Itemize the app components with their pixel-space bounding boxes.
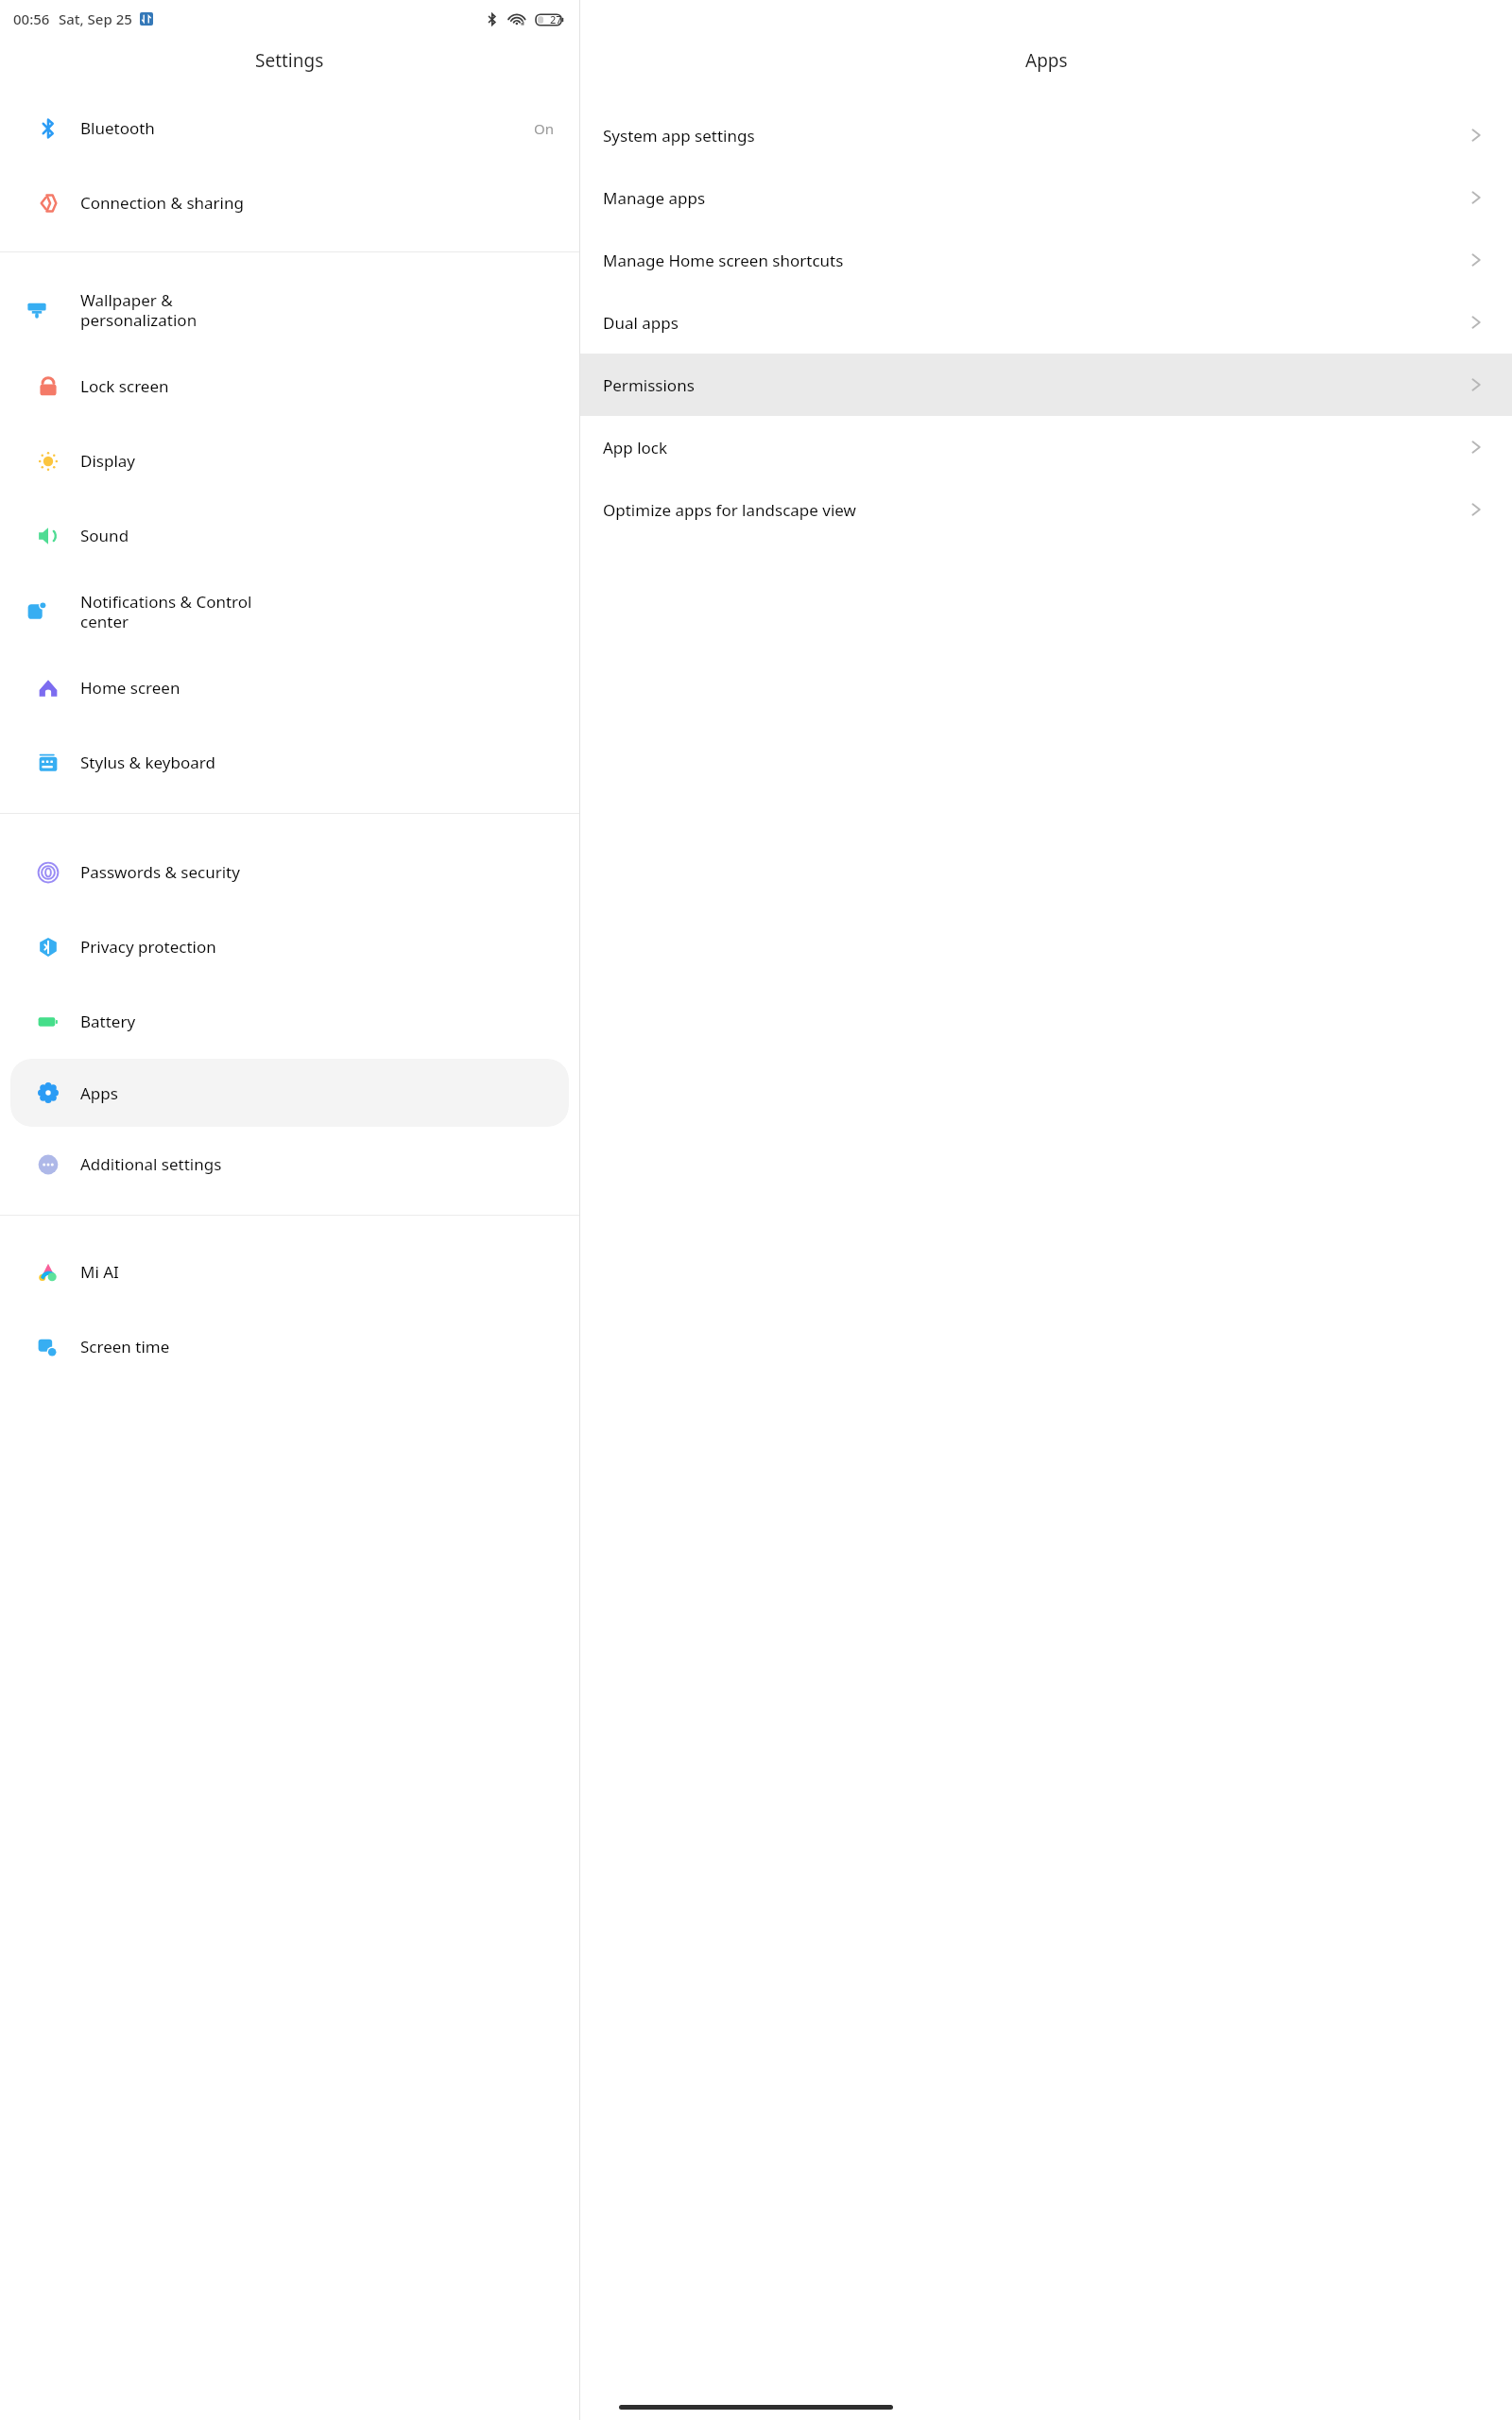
- staticText: App lock: [603, 437, 1465, 458]
- staticText: Connection & sharing: [80, 192, 554, 214]
- button[interactable]: Notifications & Control center: [10, 573, 569, 650]
- button[interactable]: Connection & sharing: [10, 165, 569, 240]
- button[interactable]: Privacy protection: [10, 909, 569, 984]
- staticText: Home screen: [80, 677, 554, 699]
- button[interactable]: Bluetooth: [10, 91, 569, 165]
- staticText: 27: [550, 12, 562, 26]
- staticText: Apps: [80, 1082, 554, 1104]
- staticText: Permissions: [603, 374, 1465, 396]
- button[interactable]: Permissions: [580, 354, 1512, 416]
- button[interactable]: Wallpaper & personalization: [10, 271, 569, 349]
- button[interactable]: System app settings: [580, 104, 1512, 166]
- button[interactable]: Battery: [10, 984, 569, 1059]
- button[interactable]: Stylus & keyboard: [10, 725, 569, 800]
- button[interactable]: Lock screen: [10, 349, 569, 423]
- staticText: Screen time: [80, 1336, 554, 1357]
- staticText: Mi AI: [80, 1261, 554, 1283]
- staticText: Lock screen: [80, 375, 554, 397]
- button[interactable]: Dual apps: [580, 291, 1512, 354]
- staticText: Stylus & keyboard: [80, 752, 554, 773]
- button[interactable]: Home screen: [10, 650, 569, 725]
- staticText: Additional settings: [80, 1153, 554, 1175]
- button[interactable]: Screen time: [10, 1309, 569, 1384]
- button[interactable]: Manage apps: [580, 166, 1512, 229]
- button[interactable]: Sound: [10, 498, 569, 573]
- staticText: Passwords & security: [80, 861, 554, 883]
- button[interactable]: Display: [10, 423, 569, 498]
- staticText: Notifications & Control center: [80, 591, 252, 632]
- staticText: On: [534, 119, 554, 138]
- staticText: Privacy protection: [80, 936, 554, 958]
- button[interactable]: Manage Home screen shortcuts: [580, 229, 1512, 291]
- staticText: Sound: [80, 525, 554, 546]
- staticText: System app settings: [603, 125, 1465, 147]
- button[interactable]: Optimize apps for landscape view: [580, 478, 1512, 541]
- staticText: Display: [80, 450, 554, 472]
- staticText: 00:56: [13, 9, 50, 28]
- button[interactable]: Apps: [10, 1059, 569, 1127]
- staticText: Bluetooth: [80, 117, 534, 139]
- staticText: Manage Home screen shortcuts: [603, 250, 1465, 271]
- button[interactable]: Additional settings: [10, 1127, 569, 1201]
- button[interactable]: Passwords & security: [10, 835, 569, 909]
- staticText: Dual apps: [603, 312, 1465, 334]
- button[interactable]: App lock: [580, 416, 1512, 478]
- staticText: Sat, Sep 25: [59, 9, 132, 28]
- staticText: Optimize apps for landscape view: [603, 499, 1465, 521]
- staticText: Apps: [1025, 48, 1068, 73]
- staticText: Settings: [255, 48, 324, 73]
- staticText: Manage apps: [603, 187, 1465, 209]
- button[interactable]: Mi AI: [10, 1235, 569, 1309]
- staticText: Battery: [80, 1011, 554, 1032]
- staticText: Wallpaper & personalization: [80, 289, 198, 331]
